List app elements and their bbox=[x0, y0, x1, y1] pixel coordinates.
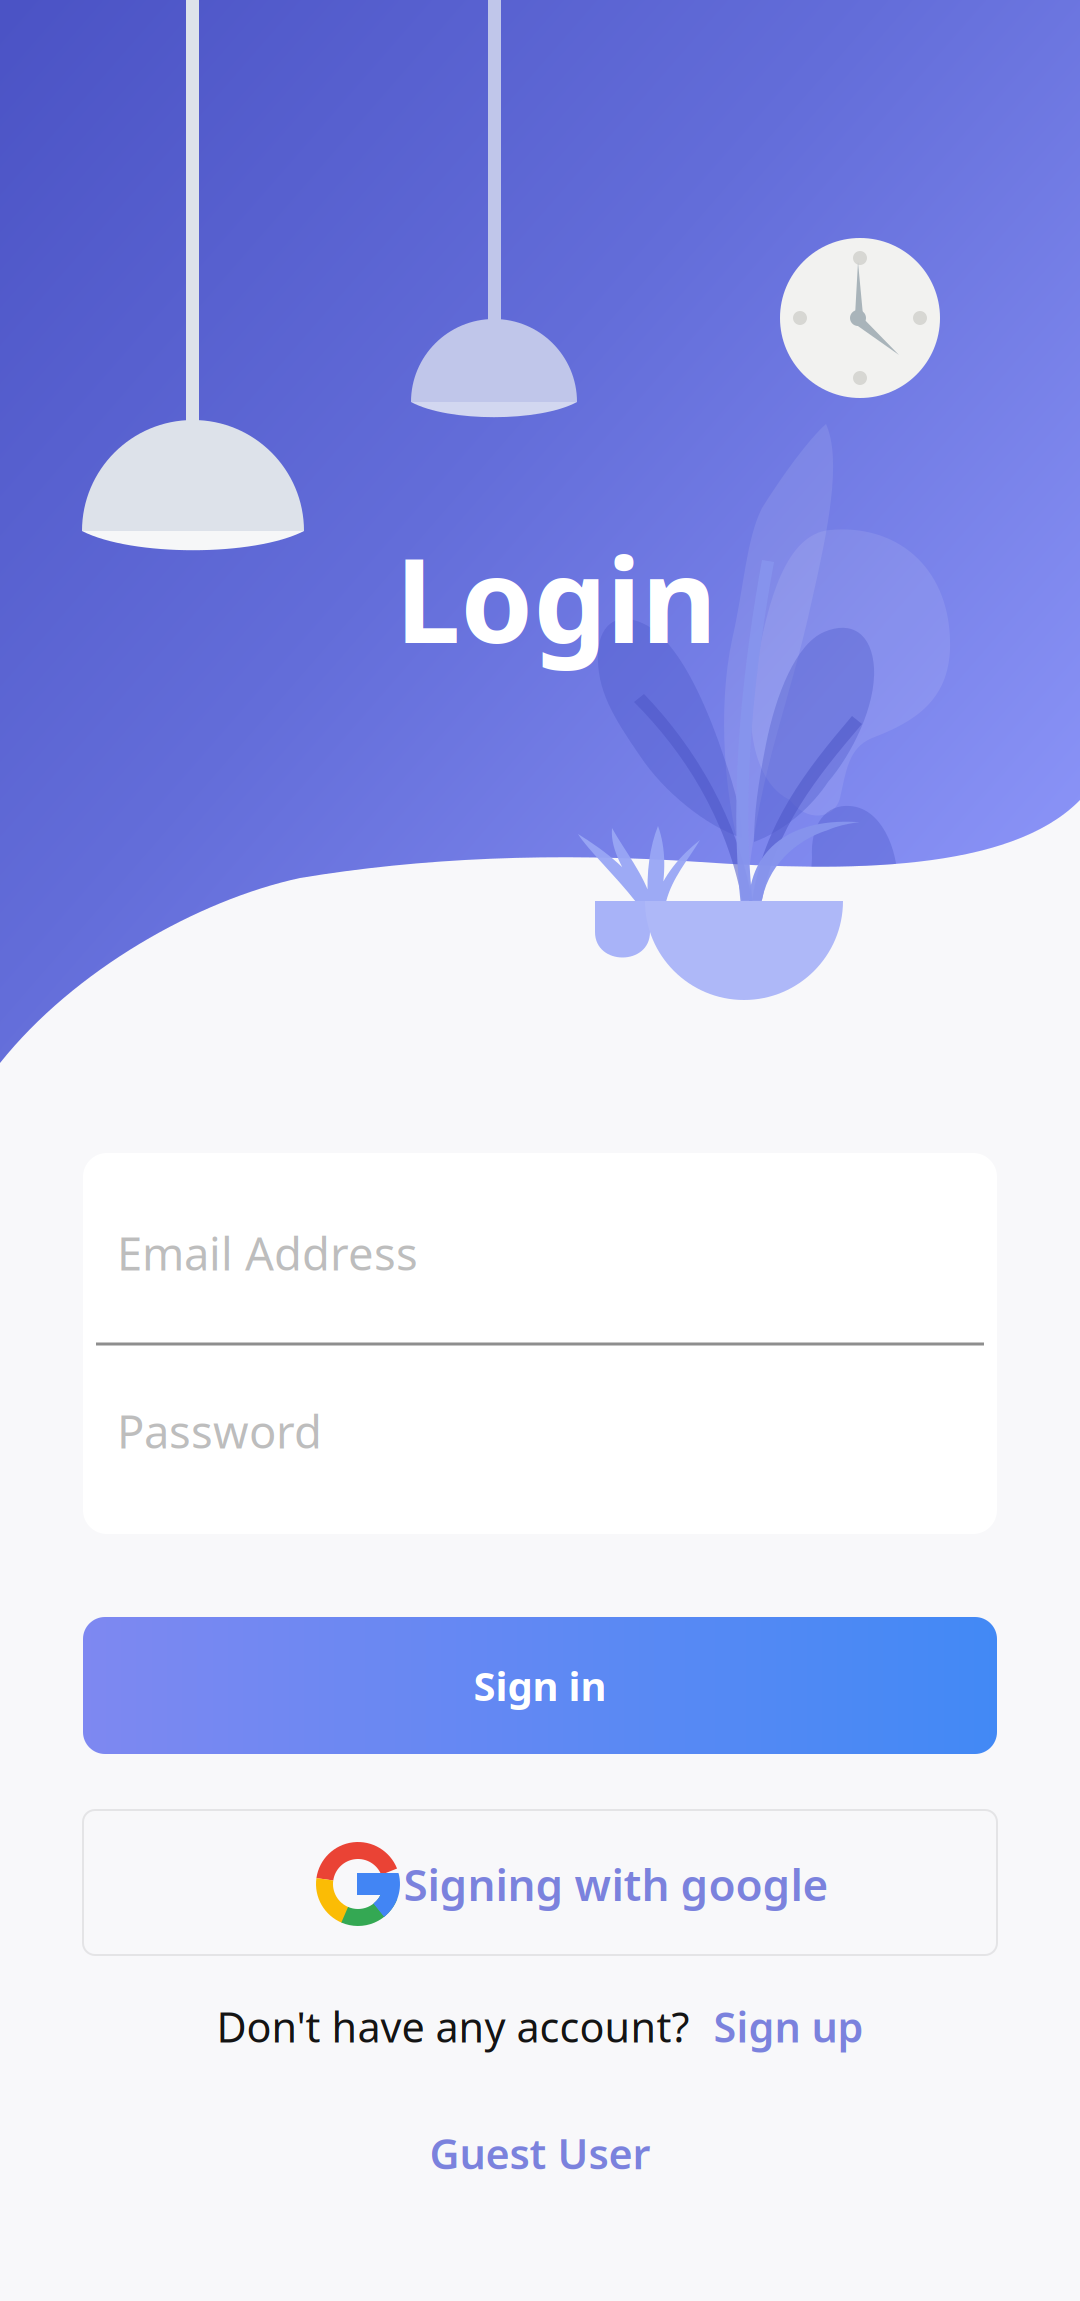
staticText: Email Address bbox=[117, 1223, 418, 1283]
staticText: Login bbox=[395, 521, 716, 675]
staticText: Sign up bbox=[713, 1999, 863, 2054]
button[interactable]: Guest User bbox=[429, 2126, 650, 2181]
staticText: Signing with google bbox=[403, 1855, 828, 1913]
button[interactable]: Sign up bbox=[713, 1999, 863, 2054]
staticText: Don't have any account? bbox=[216, 1999, 689, 2054]
staticText: Guest User bbox=[429, 2126, 650, 2181]
button[interactable]: Sign in bbox=[83, 1617, 997, 1754]
staticText: Sign in bbox=[473, 1659, 606, 1712]
staticText: Password bbox=[117, 1401, 322, 1461]
button[interactable]: Email Address bbox=[117, 1158, 963, 1348]
button[interactable]: Signing with google bbox=[83, 1810, 997, 1955]
button[interactable]: Password bbox=[117, 1336, 963, 1526]
